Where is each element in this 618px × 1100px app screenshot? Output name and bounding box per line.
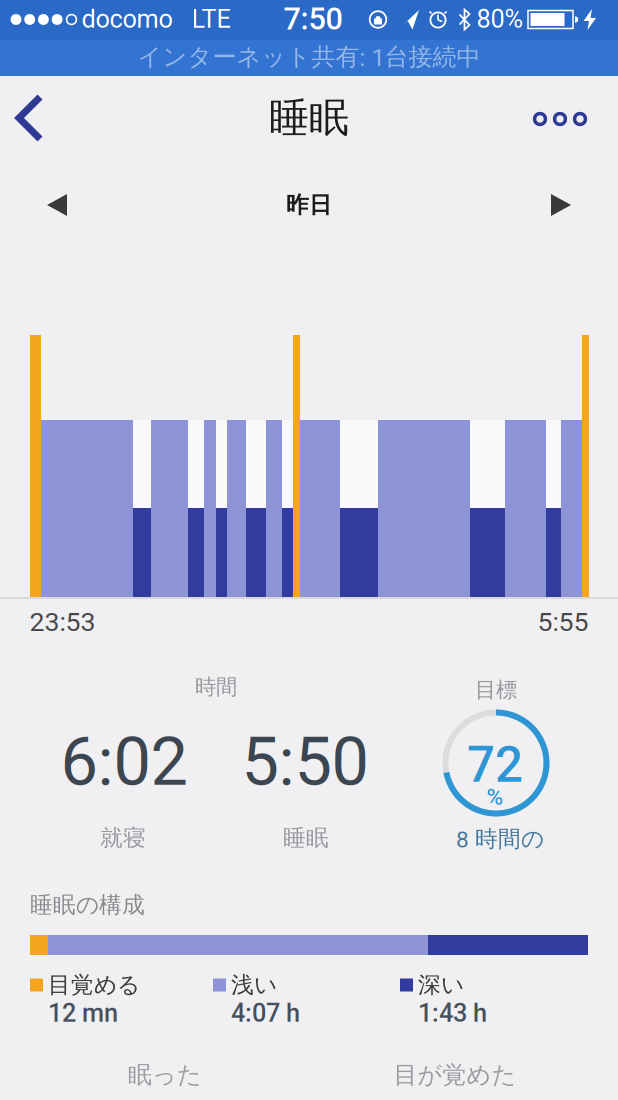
button[interactable] (29, 179, 85, 231)
staticText: 5:55 (537, 606, 588, 638)
staticText: 5:50 (241, 723, 368, 801)
staticText: 6:02 (60, 723, 187, 801)
staticText: 4:07 h (231, 998, 300, 1028)
staticText: 目標 (475, 677, 517, 703)
staticText: 1:43 h (418, 998, 487, 1028)
staticText: 睡眠の構成 (30, 891, 145, 919)
staticText: 就寝 (100, 824, 146, 852)
staticText: 眠った (128, 1060, 202, 1090)
staticText: 睡眠 (283, 824, 329, 852)
staticText: 80% (476, 4, 523, 34)
staticText: 7:50 (283, 1, 342, 37)
staticText: 目覚める (48, 971, 140, 999)
button[interactable] (0, 87, 56, 151)
staticText: 23:53 (29, 606, 95, 638)
staticText: 8 時間の (456, 825, 544, 853)
staticText: docomo (81, 4, 172, 34)
staticText: 72 (467, 736, 523, 794)
staticText: インターネット共有: 1台接続中 (137, 42, 480, 72)
staticText: 浅い (231, 971, 277, 999)
staticText: 深い (418, 971, 464, 999)
staticText: 睡眠 (269, 93, 349, 142)
staticText: 目が覚めた (393, 1060, 516, 1090)
staticText: 12 mn (48, 998, 118, 1028)
staticText: % (486, 784, 503, 810)
button[interactable] (520, 91, 600, 147)
button[interactable] (533, 179, 589, 231)
staticText: 昨日 (286, 191, 332, 219)
staticText: 時間 (195, 674, 237, 700)
staticText: LTE (191, 4, 230, 34)
